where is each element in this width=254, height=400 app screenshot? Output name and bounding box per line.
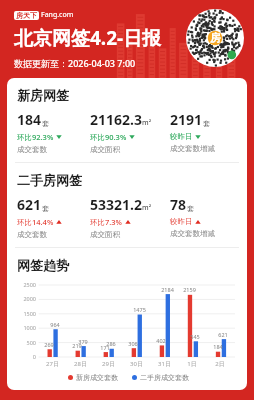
staticText: 新房网签 (17, 87, 69, 103)
staticText: 500 (26, 339, 36, 346)
button[interactable]: 扫描二维码 (186, 9, 244, 67)
button[interactable]: 新房网签 (7, 78, 247, 162)
staticText: 2159 (183, 286, 196, 293)
staticText: 269 (44, 341, 54, 348)
staticText: 套 (42, 119, 49, 128)
staticText: 402 (156, 337, 166, 344)
staticText: m² (142, 118, 152, 128)
staticText: 2日 (215, 360, 225, 368)
staticText: 0 (32, 353, 36, 360)
staticText: 1日 (187, 360, 197, 368)
staticText: 286 (106, 340, 116, 347)
staticText: 环比92.3% (17, 132, 54, 142)
staticText: 二手房网签 (17, 172, 82, 188)
staticText: 成交套数增减 (170, 144, 215, 153)
staticText: 171 (100, 344, 110, 351)
staticText: 环比7.3% (90, 217, 123, 227)
staticText: 成交面积 (90, 145, 120, 154)
staticText: 621 (17, 195, 42, 214)
staticText: 较昨日 (170, 217, 193, 226)
staticText: 306 (128, 340, 138, 347)
staticText: 较昨日 (170, 132, 193, 141)
staticText: 53321.2 (90, 195, 142, 214)
staticText: 379 (78, 338, 88, 345)
staticText: 545 (190, 333, 200, 340)
staticText: 二手房成交套数 (140, 373, 189, 382)
staticText: 环比90.3% (90, 132, 127, 142)
staticText: 964 (50, 321, 60, 328)
staticText: 2000 (23, 295, 36, 302)
staticText: 78 (170, 195, 187, 214)
staticText: 套 (187, 204, 194, 213)
button[interactable]: 新房成交套数 (68, 373, 118, 382)
staticText: m² (142, 203, 152, 213)
staticText: 29日 (102, 360, 115, 368)
staticText: 网签趋势 (17, 257, 69, 273)
staticText: 1000 (23, 324, 36, 331)
staticText: 房 (210, 31, 221, 45)
staticText: 21162.3 (90, 110, 142, 129)
staticText: 数据更新至：2026-04-03 7:00 (14, 57, 136, 69)
staticText: 北京网签4.2-日报 (14, 25, 162, 51)
staticText: 环比14.4% (17, 217, 54, 227)
staticText: 套 (42, 204, 49, 213)
staticText: 31日 (158, 360, 171, 368)
staticText: Fang.com (41, 10, 74, 20)
staticText: 27日 (46, 360, 59, 368)
staticText: 新房成交套数 (76, 373, 118, 382)
staticText: 184 (213, 343, 223, 350)
staticText: 成交套数增减 (170, 229, 215, 238)
staticText: 2184 (161, 286, 174, 293)
button[interactable]: 二手房成交套数 (132, 373, 189, 382)
staticText: 房天下 (16, 11, 37, 20)
staticText: 621 (218, 331, 228, 338)
staticText: 2191 (170, 110, 203, 129)
staticText: 成交面积 (90, 230, 120, 239)
staticText: 1475 (133, 306, 146, 313)
staticText: 28日 (74, 360, 87, 368)
staticText: 1500 (23, 310, 36, 317)
staticText: 219 (72, 342, 82, 349)
staticText: 184 (17, 110, 42, 129)
staticText: 成交套数 (17, 230, 47, 239)
staticText: 30日 (130, 360, 143, 368)
staticText: 成交套数 (17, 145, 47, 154)
button[interactable]: 二手房网签 (7, 163, 247, 247)
staticText: 2500 (23, 281, 36, 288)
staticText: 套 (203, 119, 210, 128)
